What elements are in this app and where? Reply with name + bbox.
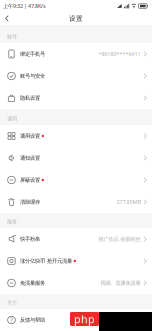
staticText: 服务 [7,218,17,225]
button[interactable]: 通知设置 [0,147,152,169]
button[interactable]: 清除缓存 [0,191,152,213]
staticText: 屏蔽设置 [20,177,40,183]
staticText: 通知设置 [20,155,40,161]
staticText: 涨分亿快币 抢开元流量 [20,258,72,264]
staticText: 上午9:32 | 47.8K/s [3,2,46,10]
button[interactable]: 屏蔽设置 [0,169,152,191]
staticText: 账号 [7,33,17,40]
staticText: php [74,312,95,326]
staticText: 隐私设置 [20,95,40,101]
staticText: 设置 [69,14,83,23]
button[interactable]: ? [0,309,152,331]
button[interactable]: Back [0,12,14,25]
staticText: 清除缓存 [20,199,40,205]
staticText: 视频、直播免流量 [100,280,140,286]
staticText: 关于 [7,299,17,306]
staticText: 推广作品, 收获粉丝 [98,235,140,243]
button[interactable]: 通用设置 [0,125,152,147]
staticText: ? [10,316,13,324]
staticText: 绑定手机号 [20,51,45,57]
button[interactable]: 快手粉条 [0,228,152,250]
button[interactable]: 账号与安全 [0,65,152,87]
staticText: 通用 [7,115,17,122]
staticText: 快手粉条 [20,236,40,242]
staticText: 通用设置 [20,133,40,139]
button[interactable]: 涨分亿快币 抢开元流量 [0,250,152,272]
button[interactable]: 隐私设置 [0,87,152,109]
staticText: 277.95MB [116,198,140,206]
staticText: 反馈与帮助 [20,317,45,323]
staticText: 免流量服务 [20,280,45,286]
staticText: 账号与安全 [20,73,45,79]
staticText: +86180****6411 [98,50,140,58]
button[interactable]: 免流量服务 [0,272,152,294]
button[interactable]: 绑定手机号 [0,43,152,65]
